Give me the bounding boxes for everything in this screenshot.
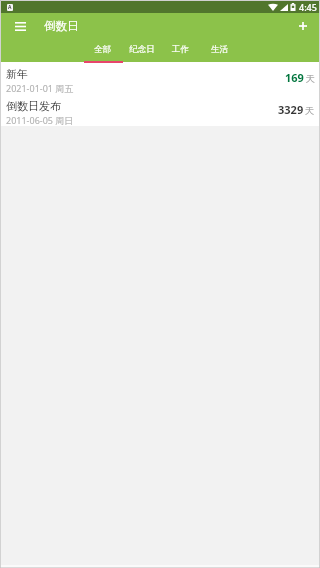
button[interactable]: 工作 <box>161 39 200 61</box>
staticText: 纪念日 <box>129 44 155 55</box>
button[interactable]: 全部 <box>83 39 122 61</box>
staticText: 生活 <box>211 44 228 55</box>
staticText: 新年 <box>6 67 28 81</box>
button[interactable]: 生活 <box>200 39 239 61</box>
button[interactable]: 新年 <box>1 62 319 94</box>
staticText: 2011-06-05 周日 <box>6 114 74 126</box>
staticText: 全部 <box>94 44 111 55</box>
staticText: 2021-01-01 周五 <box>6 82 74 94</box>
staticText: A <box>8 4 12 11</box>
button[interactable]: Open navigation drawer <box>6 13 34 39</box>
staticText: 倒数日 <box>44 19 79 33</box>
button[interactable]: Add countdown <box>289 13 317 39</box>
button[interactable]: 倒数日发布 <box>1 94 319 126</box>
staticText: 倒数日发布 <box>6 99 61 113</box>
button[interactable]: 纪念日 <box>122 39 161 61</box>
staticText: 169 天 <box>285 70 315 85</box>
staticText: 3329 天 <box>278 102 315 117</box>
staticText: 4:45 <box>299 1 317 13</box>
staticText: 工作 <box>172 44 189 55</box>
